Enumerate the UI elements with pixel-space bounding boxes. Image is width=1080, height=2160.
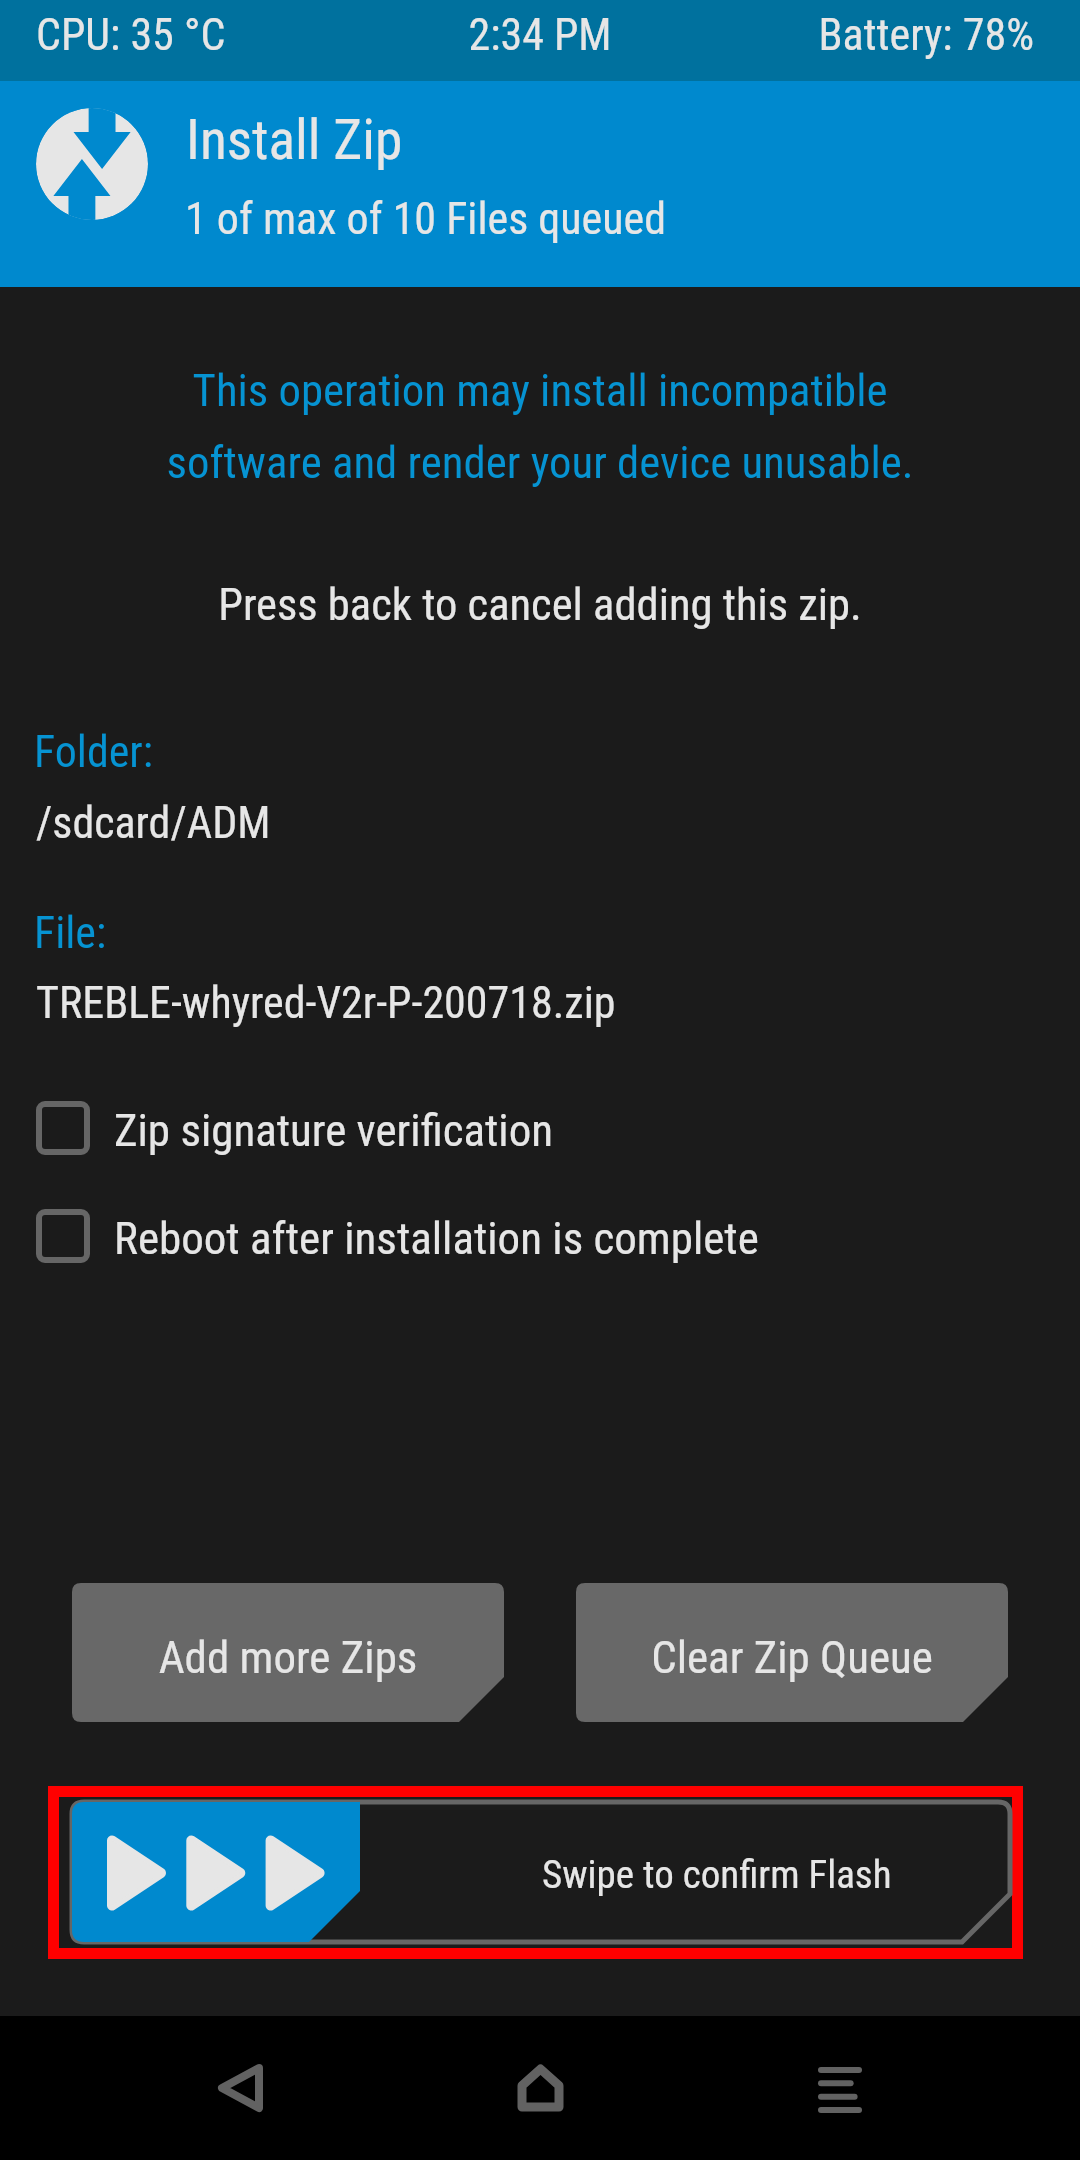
staticText: Reboot after installation is complete — [114, 1212, 759, 1265]
staticText: Swipe to confirm Flash — [542, 1852, 892, 1898]
staticText: TREBLE-whyred-V2r-P-200718.zip — [36, 977, 616, 1029]
staticText: Battery: 78% — [0, 9, 1034, 61]
button[interactable]: Reboot after installation is complete — [0, 1193, 1080, 1279]
button[interactable]: Zip signature verification — [0, 1085, 1080, 1171]
staticText: Press back to cancel adding this zip. — [0, 579, 1080, 631]
button[interactable]: Back — [120, 2016, 360, 2160]
staticText: 1 of max of 10 Files queued — [185, 193, 666, 245]
staticText: Zip signature verification — [114, 1104, 554, 1157]
button[interactable]: Swipe to confirm Flash — [48, 1786, 1023, 1959]
staticText: Clear Zip Queue — [576, 1631, 1008, 1684]
staticText: 2:34 PM — [0, 9, 1080, 61]
staticText: This operation may install incompatible … — [0, 364, 1080, 489]
staticText: File: — [34, 907, 107, 959]
staticText: CPU: 35 °C — [36, 9, 226, 61]
staticText: /sdcard/ADM — [36, 797, 271, 849]
button[interactable]: Home — [420, 2016, 660, 2160]
staticText: Add more Zips — [72, 1631, 504, 1684]
button[interactable]: Add more Zips — [72, 1583, 504, 1722]
staticText: Install Zip — [186, 108, 403, 173]
button[interactable]: Menu — [720, 2016, 960, 2160]
button[interactable]: Clear Zip Queue — [576, 1583, 1008, 1722]
staticText: Folder: — [34, 726, 154, 778]
